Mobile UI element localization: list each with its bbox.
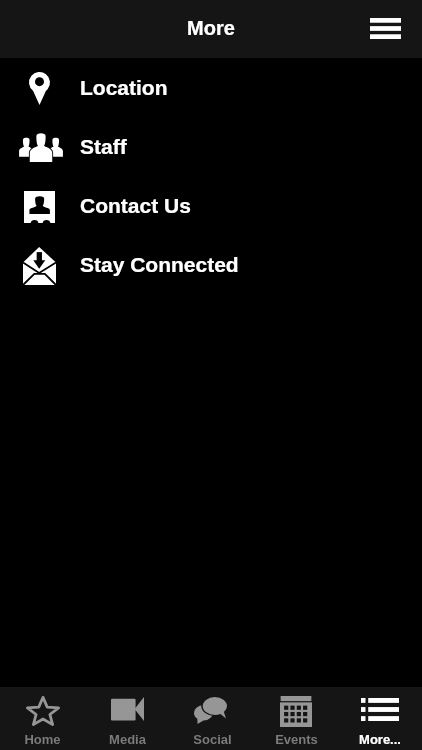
button[interactable]: Stay Connected	[0, 236, 422, 295]
staticText: More...	[359, 732, 401, 747]
staticText: Staff	[80, 135, 127, 158]
staticText: More	[187, 17, 235, 39]
button[interactable]: Location	[0, 59, 422, 118]
button[interactable]: Media	[85, 687, 170, 750]
staticText: Media	[109, 732, 146, 747]
button[interactable]: Menu	[361, 5, 409, 53]
button[interactable]: Contact Us	[0, 177, 422, 236]
staticText: Social	[193, 732, 232, 747]
button[interactable]: More...	[338, 687, 422, 750]
staticText: Home	[24, 732, 61, 747]
button[interactable]: Home	[0, 687, 85, 750]
button[interactable]: Events	[254, 687, 338, 750]
button[interactable]: Social	[170, 687, 254, 750]
button[interactable]: Staff	[0, 118, 422, 177]
staticText: Contact Us	[80, 194, 191, 217]
staticText: Location	[80, 76, 168, 99]
staticText: Events	[275, 732, 318, 747]
staticText: Stay Connected	[80, 253, 239, 276]
